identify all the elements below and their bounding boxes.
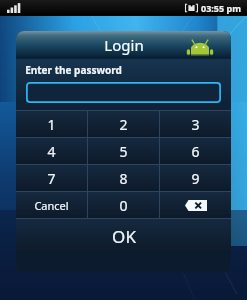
staticText: 1 (47, 115, 56, 134)
staticText: Enter the password (25, 63, 122, 77)
staticText: Cancel (34, 198, 69, 213)
staticText: 5 (119, 142, 128, 161)
button[interactable]: OK (16, 219, 231, 253)
staticText: 4 (47, 142, 56, 161)
staticText: 6 (191, 142, 200, 161)
button[interactable]: 6 (160, 138, 231, 164)
staticText: 9 (191, 169, 200, 188)
staticText: 3 (191, 115, 200, 134)
staticText: 03:55 pm (201, 2, 241, 14)
staticText: 8 (119, 169, 128, 188)
button[interactable]: 0 (88, 192, 159, 218)
button[interactable]: 7 (16, 165, 87, 191)
button[interactable]: 8 (88, 165, 159, 191)
button[interactable]: 9 (160, 165, 231, 191)
button[interactable]: Backspace (160, 192, 231, 218)
button[interactable]: 4 (16, 138, 87, 164)
button[interactable]: 5 (88, 138, 159, 164)
button[interactable] (26, 82, 221, 103)
staticText: OK (112, 225, 136, 248)
button[interactable]: 3 (160, 111, 231, 137)
staticText: 2 (119, 115, 128, 134)
staticText: 0 (119, 196, 128, 215)
staticText: Login (104, 35, 144, 55)
staticText: 7 (47, 169, 56, 188)
button[interactable]: 1 (16, 111, 87, 137)
button[interactable]: Cancel (16, 192, 87, 218)
button[interactable]: 2 (88, 111, 159, 137)
